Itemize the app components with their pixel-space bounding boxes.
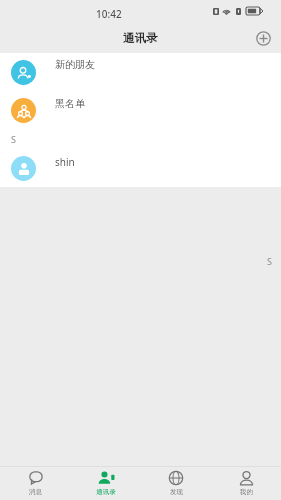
staticText: S (267, 255, 272, 267)
button[interactable]: 新的朋友 (0, 53, 281, 91)
staticText: S (11, 133, 16, 145)
button[interactable]: 发现 (141, 471, 211, 496)
button[interactable]: 我的 (211, 471, 281, 496)
staticText: 10:42 (96, 7, 122, 21)
staticText: 新的朋友 (55, 58, 95, 71)
staticText: 通讯录 (123, 31, 158, 45)
staticText: shin (55, 155, 75, 169)
staticText: 通讯录 (96, 488, 116, 496)
button[interactable]: 消息 (0, 471, 71, 496)
staticText: 发现 (170, 488, 183, 496)
button[interactable]: shin (0, 149, 281, 187)
button[interactable]: 通讯录 (71, 471, 141, 496)
button[interactable]: Add contact (251, 26, 275, 50)
button[interactable]: 黑名单 (0, 91, 281, 129)
staticText: 我的 (240, 488, 253, 496)
staticText: 消息 (29, 488, 42, 496)
staticText: 黑名单 (55, 97, 85, 110)
